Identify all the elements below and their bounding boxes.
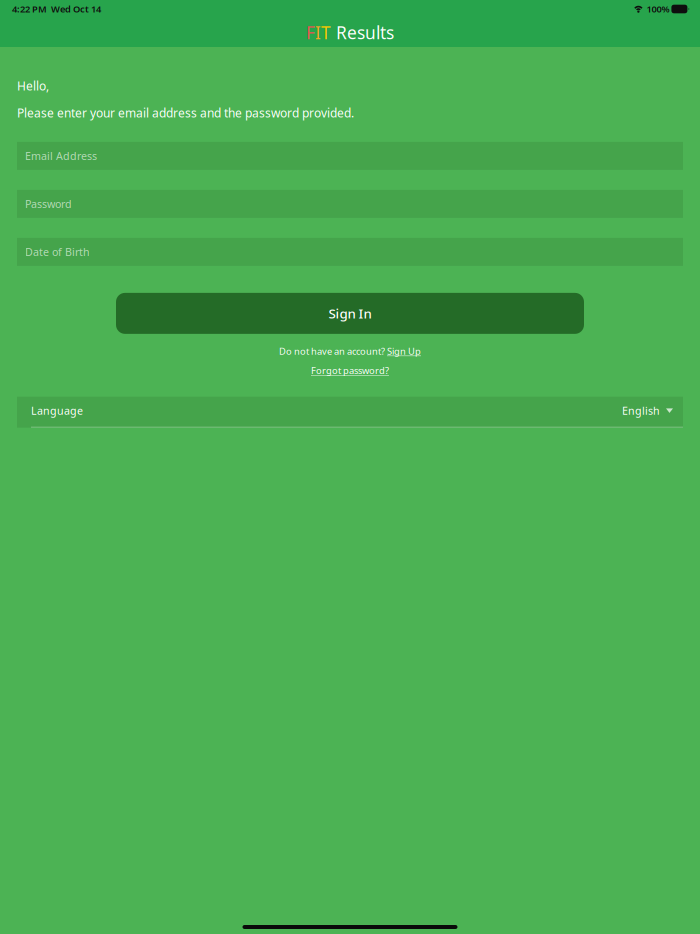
- button[interactable]: Password: [17, 190, 683, 218]
- button[interactable]: Email Address: [17, 142, 683, 170]
- staticText: English: [622, 404, 660, 418]
- staticText: T: [321, 21, 331, 44]
- staticText: Forgot password?: [311, 364, 389, 377]
- staticText: Results: [331, 21, 394, 44]
- staticText: 4:22 PM: [12, 3, 47, 15]
- staticText: Do not have an account?: [279, 345, 387, 357]
- button[interactable]: Sign Up: [387, 345, 421, 357]
- button[interactable]: Forgot password?: [311, 364, 389, 377]
- staticText: Please enter your email address and the …: [17, 105, 354, 121]
- staticText: Sign Up: [387, 345, 421, 357]
- button[interactable]: Sign In: [116, 293, 584, 334]
- staticText: 100%: [646, 3, 669, 15]
- staticText: I: [315, 21, 321, 44]
- staticText: Language: [31, 404, 83, 418]
- staticText: Date of Birth: [25, 245, 90, 259]
- staticText: Hello,: [17, 78, 49, 94]
- button[interactable]: Date of Birth: [17, 238, 683, 266]
- staticText: Sign In: [328, 304, 371, 322]
- staticText: Email Address: [25, 149, 97, 163]
- staticText: Wed Oct 14: [51, 3, 101, 15]
- staticText: F: [306, 21, 315, 44]
- button[interactable]: Language: [17, 397, 683, 428]
- staticText: Password: [25, 197, 72, 211]
